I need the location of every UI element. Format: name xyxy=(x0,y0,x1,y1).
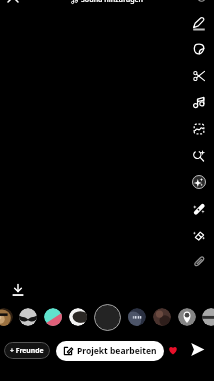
button[interactable]: Musik xyxy=(188,91,210,113)
button[interactable]: Speichern xyxy=(9,281,27,299)
button[interactable]: Gefällt mir xyxy=(165,342,181,358)
button[interactable]: Schließen xyxy=(4,0,22,6)
button[interactable]: Effekt xyxy=(128,308,146,326)
button[interactable]: Effekt xyxy=(19,308,37,326)
button[interactable]: KI Effekte xyxy=(188,171,210,193)
button[interactable]: Effekt xyxy=(153,308,171,326)
button[interactable]: Effekt xyxy=(0,308,13,326)
staticText: Projekt bearbeiten xyxy=(77,345,157,357)
button[interactable]: Zuschneiden xyxy=(188,65,210,87)
staticText: + Freunde xyxy=(10,346,44,355)
button[interactable]: Sound hinzufügen xyxy=(67,0,148,7)
button[interactable]: + Freunde xyxy=(4,342,50,359)
button[interactable]: Effekt xyxy=(69,308,87,326)
button[interactable]: Sticker xyxy=(188,38,210,60)
button[interactable]: Projekt bearbeiten xyxy=(56,341,164,361)
button[interactable]: Effekt xyxy=(44,308,62,326)
button[interactable]: Radierer xyxy=(188,224,210,246)
button[interactable]: Mehr xyxy=(192,0,210,6)
staticText: Sound hinzufügen xyxy=(81,0,144,5)
button[interactable]: Suche xyxy=(188,145,210,167)
button[interactable]: Senden xyxy=(186,338,208,360)
button[interactable]: Zauberstab xyxy=(188,198,210,220)
button[interactable]: Effekt xyxy=(178,308,196,326)
button[interactable]: Effekt xyxy=(202,308,214,326)
button[interactable]: Foto xyxy=(188,118,210,140)
button[interactable]: Zeichnen xyxy=(188,12,210,34)
button[interactable]: Aufnehmen xyxy=(94,304,121,331)
button[interactable]: Anhang xyxy=(188,251,210,273)
